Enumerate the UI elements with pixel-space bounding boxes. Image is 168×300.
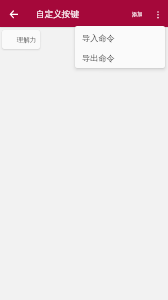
- button[interactable]: Back: [4, 4, 23, 23]
- button[interactable]: 理解力: [2, 30, 40, 49]
- staticText: 理解力: [17, 36, 37, 44]
- staticText: 自定义按键: [36, 9, 79, 20]
- button[interactable]: 导入命令: [75, 27, 165, 48]
- button[interactable]: More options: [148, 4, 168, 24]
- button[interactable]: 添加: [124, 0, 148, 27]
- button[interactable]: 导出命令: [75, 48, 165, 68]
- staticText: 添加: [132, 11, 143, 18]
- staticText: 导入命令: [82, 33, 115, 43]
- staticText: 导出命令: [82, 53, 115, 63]
